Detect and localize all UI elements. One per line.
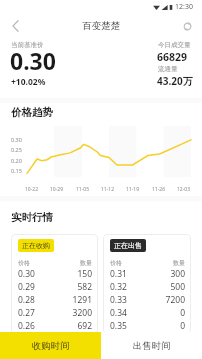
staticText: 12:30 [175, 2, 193, 12]
staticText: 正在收购 [22, 241, 50, 250]
staticText: 数量 [173, 259, 185, 267]
staticText: 0 [180, 307, 185, 319]
staticText: 价格 [110, 259, 173, 267]
button[interactable]: Back [0, 14, 25, 38]
staticText: 0.33 [110, 294, 165, 306]
staticText: 0.26 [18, 320, 77, 332]
staticText: 流通量 [158, 65, 178, 73]
staticText: 3200 [72, 307, 92, 319]
staticText: 0.30 [18, 268, 77, 280]
staticText: 10-29 [50, 186, 64, 193]
staticText: 0.34 [110, 307, 180, 319]
staticText: 150 [77, 268, 92, 280]
staticText: 出售时间 [133, 340, 171, 352]
staticText: 12-03 [177, 186, 191, 193]
staticText: 11-05 [76, 186, 90, 193]
staticText: 0.29 [18, 281, 77, 293]
staticText: 0.30 [10, 45, 56, 76]
button[interactable]: Refresh [177, 14, 202, 38]
staticText: 0.15 [11, 167, 22, 174]
staticText: 收购时间 [32, 340, 70, 352]
staticText: 0.35 [110, 320, 180, 332]
staticText: +10.02% [11, 76, 46, 88]
staticText: 11-26 [152, 186, 166, 193]
staticText: 当前基准价 [11, 41, 44, 49]
staticText: 692 [77, 320, 92, 332]
staticText: 582 [77, 281, 92, 293]
staticText: 500 [170, 281, 185, 293]
staticText: 正在出售 [114, 241, 142, 250]
staticText: 11-12 [101, 186, 115, 193]
staticText: 数量 [80, 259, 92, 267]
staticText: 0.27 [18, 307, 72, 319]
staticText: 7200 [165, 294, 185, 306]
staticText: 0 [180, 320, 185, 332]
staticText: 价格趋势 [11, 106, 53, 119]
staticText: 0.32 [110, 281, 170, 293]
staticText: 价格 [18, 259, 80, 267]
button[interactable]: 正在出售 [103, 234, 191, 334]
button[interactable]: 出售时间 [101, 332, 202, 359]
staticText: 0.20 [11, 157, 22, 164]
staticText: 11-19 [126, 186, 140, 193]
staticText: 今日成交量 [158, 41, 191, 49]
staticText: 300 [170, 268, 185, 280]
staticText: 10-22 [25, 186, 39, 193]
staticText: 43.20万 [157, 74, 193, 88]
button[interactable]: 收购时间 [0, 332, 101, 359]
staticText: 百变楚楚 [82, 20, 120, 32]
staticText: 实时行情 [11, 211, 53, 224]
staticText: 0.25 [11, 146, 22, 153]
staticText: 0.30 [11, 136, 22, 143]
staticText: 0.28 [18, 294, 72, 306]
staticText: 0.31 [110, 268, 170, 280]
button[interactable]: 正在收购 [11, 234, 98, 334]
staticText: 66829 [157, 50, 188, 64]
staticText: 1291 [72, 294, 92, 306]
